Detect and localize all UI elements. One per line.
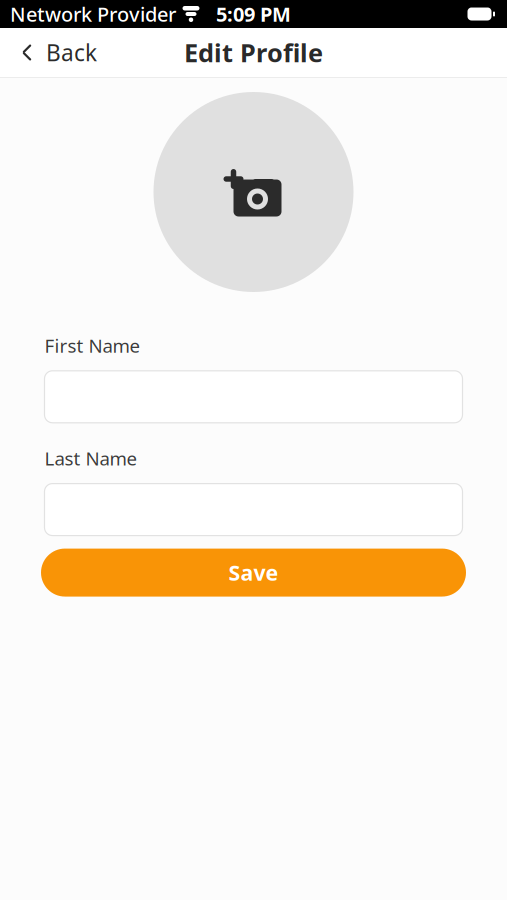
staticText: Edit Profile bbox=[184, 36, 323, 69]
button[interactable]: Back bbox=[0, 27, 111, 77]
button[interactable]: Change profile photo bbox=[153, 92, 353, 292]
staticText: Save bbox=[228, 558, 278, 587]
staticText: Back bbox=[46, 37, 97, 67]
staticText: First Name bbox=[44, 333, 140, 358]
staticText: 5:09 PM bbox=[216, 1, 291, 27]
button[interactable]: Save bbox=[41, 549, 466, 597]
staticText: Network Provider bbox=[10, 1, 176, 27]
staticText: Last Name bbox=[44, 446, 137, 471]
